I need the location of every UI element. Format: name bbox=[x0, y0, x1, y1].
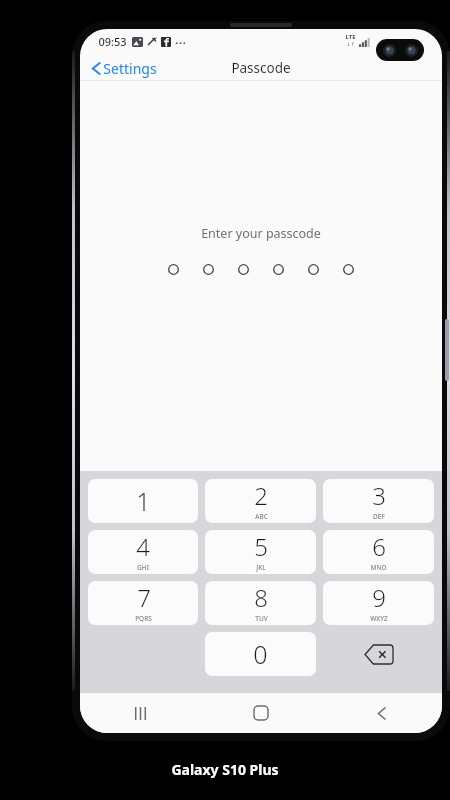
button[interactable]: 3 bbox=[323, 479, 434, 523]
staticText: 6 bbox=[372, 530, 386, 563]
staticText: MNO bbox=[370, 563, 387, 572]
staticText: TUV bbox=[255, 614, 268, 623]
staticText: 7 bbox=[137, 581, 151, 614]
staticText: JKL bbox=[256, 563, 266, 572]
staticText: LTE bbox=[345, 33, 356, 41]
button[interactable]: Recent apps bbox=[80, 693, 200, 733]
staticText: 3 bbox=[372, 479, 386, 512]
staticText: 0 bbox=[253, 637, 268, 671]
staticText: GHI bbox=[137, 563, 149, 572]
staticText: Enter your passcode bbox=[201, 225, 321, 242]
staticText: 9 bbox=[372, 581, 386, 614]
staticText: DEF bbox=[373, 512, 385, 521]
button[interactable]: Backspace bbox=[323, 632, 434, 676]
staticText: WXYZ bbox=[370, 614, 388, 623]
staticText: 5 bbox=[254, 530, 268, 563]
button[interactable]: 5 bbox=[205, 530, 316, 574]
staticText: Passcode bbox=[231, 59, 291, 77]
staticText: 2 bbox=[254, 479, 268, 512]
staticText: ABC bbox=[255, 512, 268, 521]
staticText: 09:53 bbox=[98, 34, 127, 49]
button[interactable]: Home bbox=[200, 693, 321, 733]
button[interactable]: 7 bbox=[88, 581, 198, 625]
button[interactable]: 9 bbox=[323, 581, 434, 625]
staticText: 8 bbox=[254, 581, 268, 614]
button[interactable]: 6 bbox=[323, 530, 434, 574]
staticText: ↓↑ bbox=[346, 41, 355, 47]
staticText: Settings bbox=[103, 59, 157, 78]
button[interactable]: 4 bbox=[88, 530, 198, 574]
button[interactable]: Back bbox=[321, 693, 442, 733]
staticText: 4 bbox=[136, 530, 150, 563]
button[interactable]: 1 bbox=[88, 479, 198, 523]
button[interactable]: Settings bbox=[88, 57, 161, 80]
staticText: PQRS bbox=[135, 614, 152, 623]
button[interactable]: 8 bbox=[205, 581, 316, 625]
staticText: Galaxy S10 Plus bbox=[171, 760, 279, 779]
staticText: 1 bbox=[136, 484, 151, 518]
button[interactable]: 0 bbox=[205, 632, 316, 676]
button[interactable]: 2 bbox=[205, 479, 316, 523]
